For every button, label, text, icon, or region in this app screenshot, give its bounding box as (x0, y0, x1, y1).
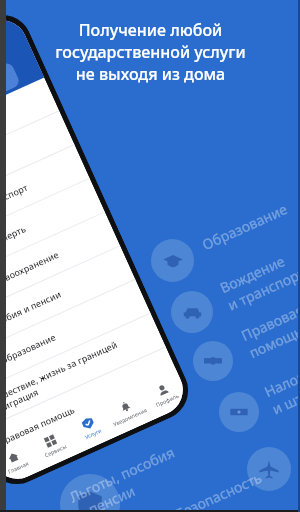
button[interactable]: Налоги и штрафы (219, 392, 259, 432)
staticText: Правовая помощь (0, 403, 77, 448)
staticText: Здоровье и здравоохранение (0, 248, 60, 313)
button[interactable]: Рождение, брак и смерть (0, 179, 105, 296)
staticText: Профиль (154, 391, 180, 408)
staticText: Налоги и штрафы (261, 355, 300, 418)
staticText: Безопасность (172, 468, 265, 512)
button[interactable]: Наука и образование (0, 280, 150, 397)
button[interactable]: Услуги (63, 402, 116, 453)
button[interactable]: Уведомления (101, 385, 154, 437)
staticText: Гражданство, визы и паспорт (0, 180, 30, 246)
staticText: Получение любой государственной услуги н… (55, 19, 246, 85)
button[interactable]: Путешествие, жизнь за границей и эмиграц… (0, 313, 166, 431)
staticText: Наука и образование (0, 331, 57, 381)
button[interactable]: Безопасность (60, 474, 120, 512)
button[interactable]: Паспорт (0, 77, 59, 195)
button[interactable]: Путешествия (247, 447, 291, 491)
staticText: Правовая помощь (238, 300, 300, 362)
button[interactable]: Главная (0, 436, 42, 487)
staticText: Вождение и транспорт (217, 246, 300, 314)
staticText: Льготы, пособия и пенсии (66, 442, 186, 512)
button[interactable]: Здоровье и здравоохранение (0, 212, 120, 329)
button[interactable]: Правовая помощь (0, 347, 181, 464)
staticText: Образование (199, 199, 291, 254)
button[interactable]: Пенсия, пособия и пенсии (0, 246, 135, 363)
staticText: Сервисы (43, 442, 68, 458)
staticText: Пенсия, пособия и пенсии (0, 287, 63, 347)
button[interactable]: Правовая помощь (193, 341, 233, 381)
button[interactable]: Транспорт (0, 111, 74, 228)
button[interactable]: Профиль (138, 368, 191, 420)
staticText: Рождение, брак и смерть (0, 222, 28, 279)
button[interactable]: Вождение и транспорт (171, 291, 213, 333)
staticText: Главная (7, 459, 30, 475)
staticText: Услуги (83, 426, 103, 440)
button[interactable]: Сервисы (26, 419, 79, 470)
staticText: Уведомления (112, 406, 148, 427)
staticText: Путешествие, жизнь за границей и эмиграц… (0, 338, 124, 420)
button[interactable]: Образование (151, 239, 194, 282)
button[interactable]: Гражданство, визы и паспорт (0, 145, 90, 262)
